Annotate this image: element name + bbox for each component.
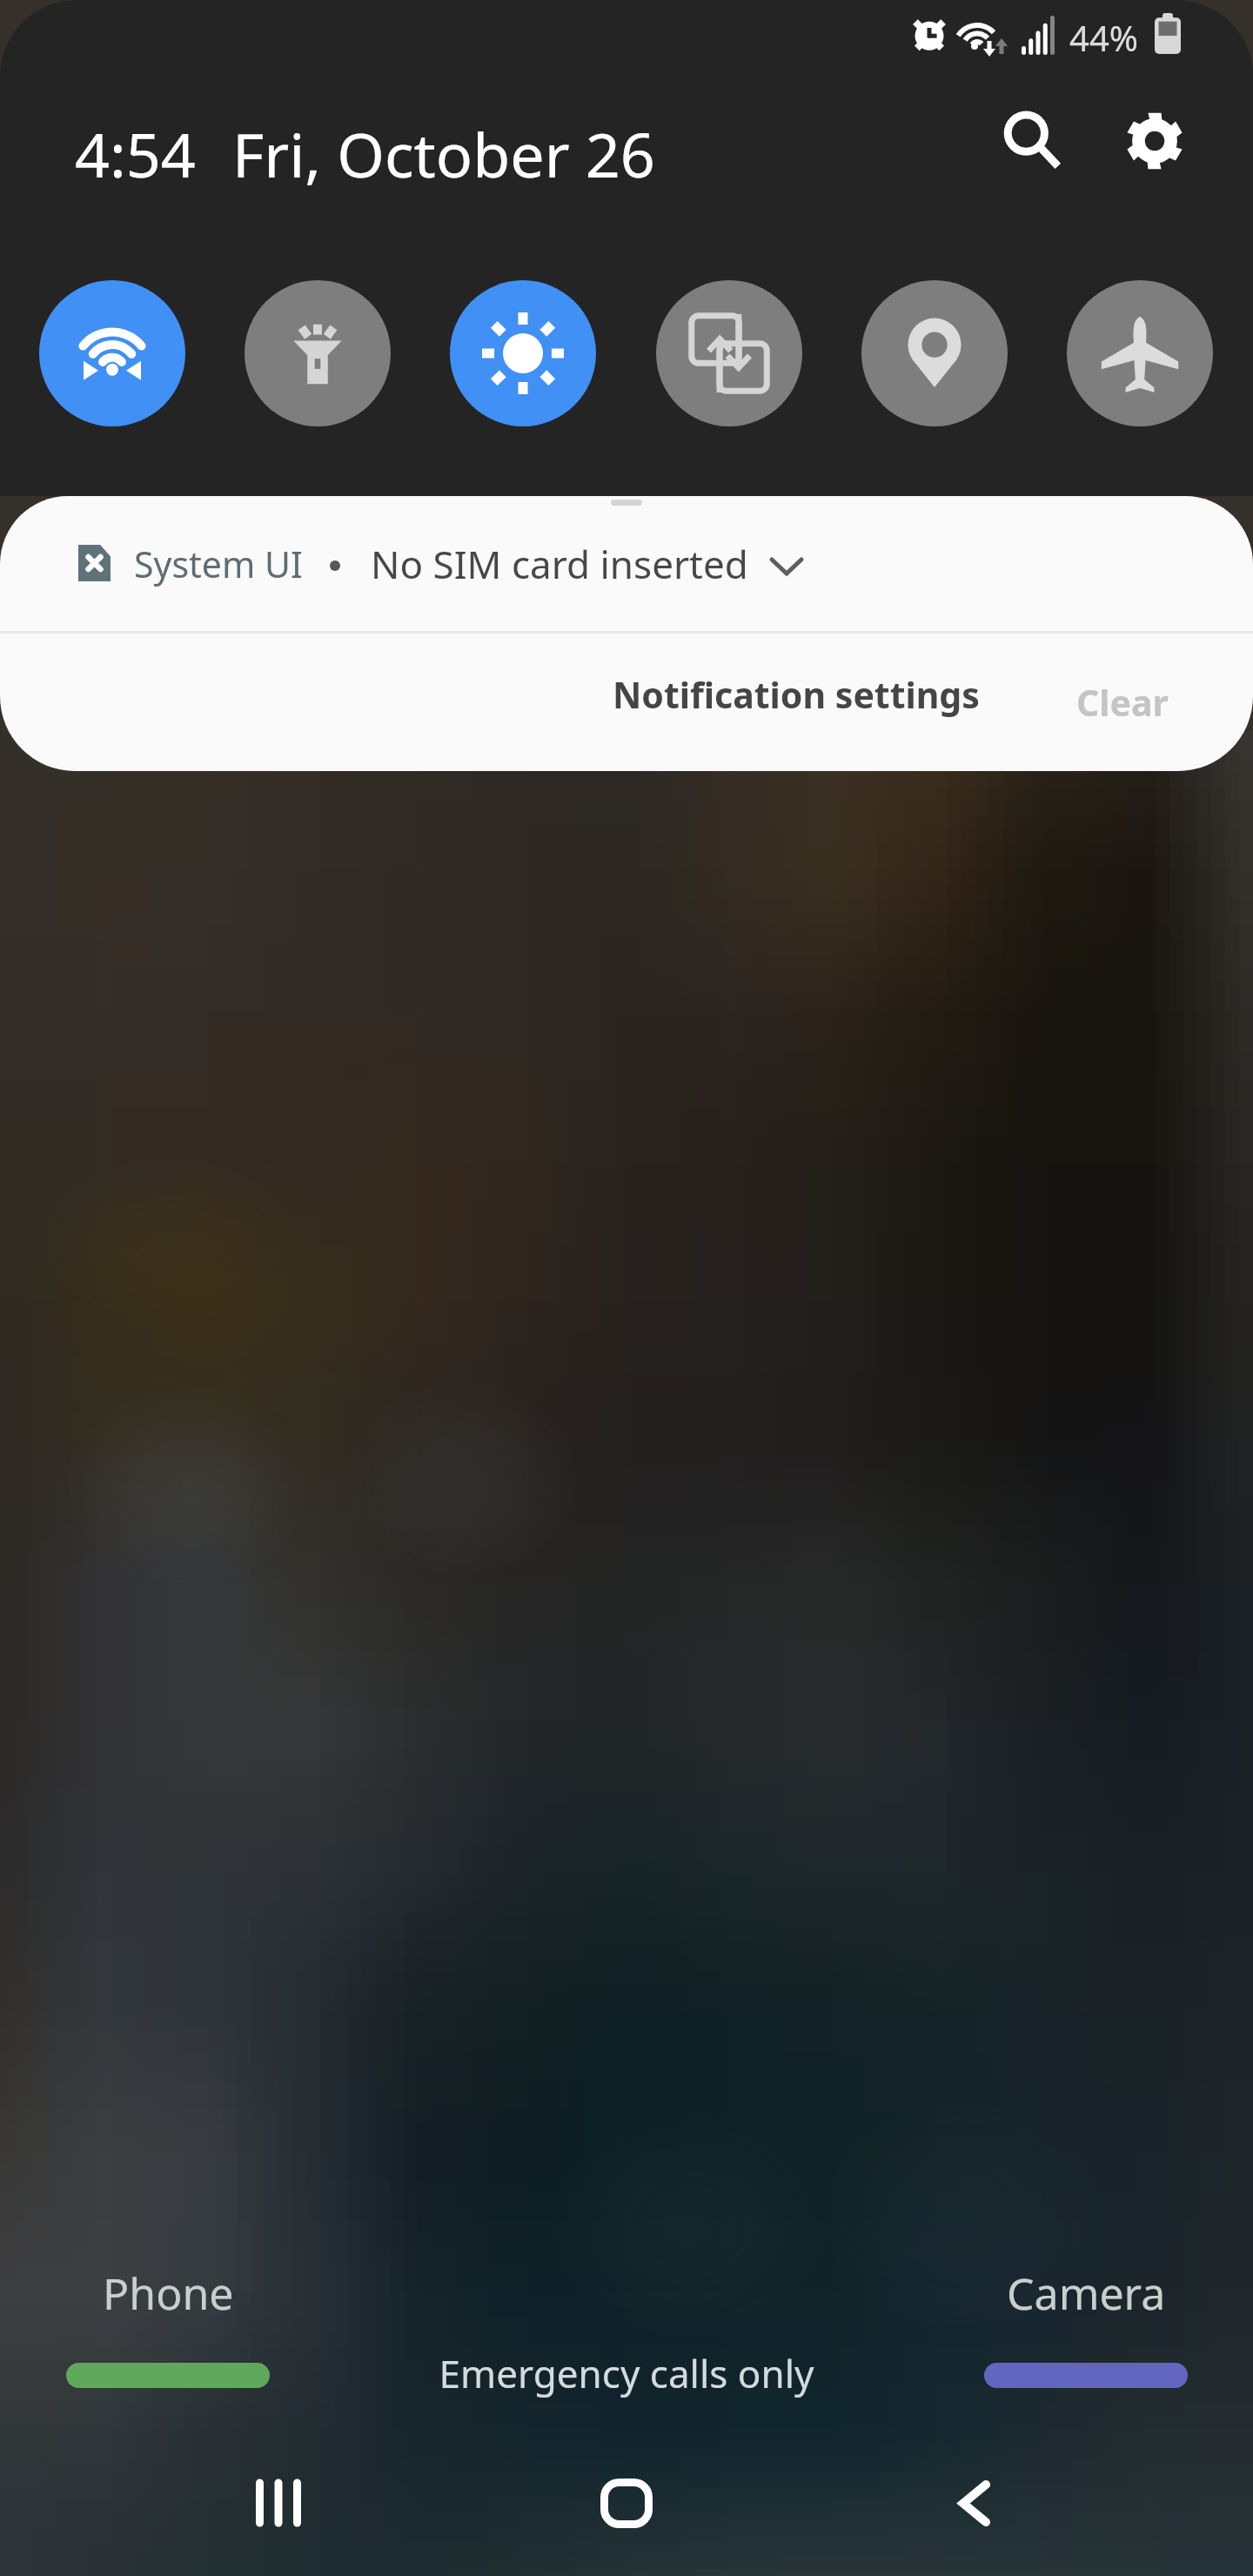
staticText: Notification settings [613, 670, 980, 719]
button[interactable]: Camera [984, 2264, 1188, 2388]
button[interactable]: Back [896, 2464, 1053, 2542]
staticText: Fri, October 26 [232, 112, 655, 195]
staticText: Clear [1076, 678, 1169, 727]
button[interactable]: Notification settings [605, 638, 988, 751]
staticText: Phone [103, 2264, 234, 2323]
button[interactable]: Location [861, 280, 1008, 426]
button[interactable]: Flashlight [245, 280, 391, 426]
button[interactable]: Flight mode [1067, 280, 1213, 426]
button[interactable]: Mobile data [656, 280, 802, 426]
staticText: 4:54 [75, 112, 196, 195]
button[interactable]: Brightness [450, 280, 596, 426]
staticText: Camera [1007, 2264, 1166, 2323]
staticText: System UI [134, 540, 303, 588]
staticText: No SIM card inserted [371, 538, 748, 590]
button[interactable]: Clear [1044, 646, 1201, 759]
button[interactable]: Home [548, 2464, 705, 2542]
button[interactable]: Phone [66, 2264, 270, 2388]
button[interactable]: Settings [1111, 97, 1198, 184]
button[interactable]: Wi-Fi [39, 280, 185, 426]
button[interactable]: System UI [0, 496, 1253, 631]
staticText: Emergency calls only [0, 2347, 1253, 2399]
button[interactable]: Recent apps [200, 2464, 357, 2542]
button[interactable]: Search [989, 97, 1076, 184]
staticText: 44% [1069, 14, 1138, 61]
